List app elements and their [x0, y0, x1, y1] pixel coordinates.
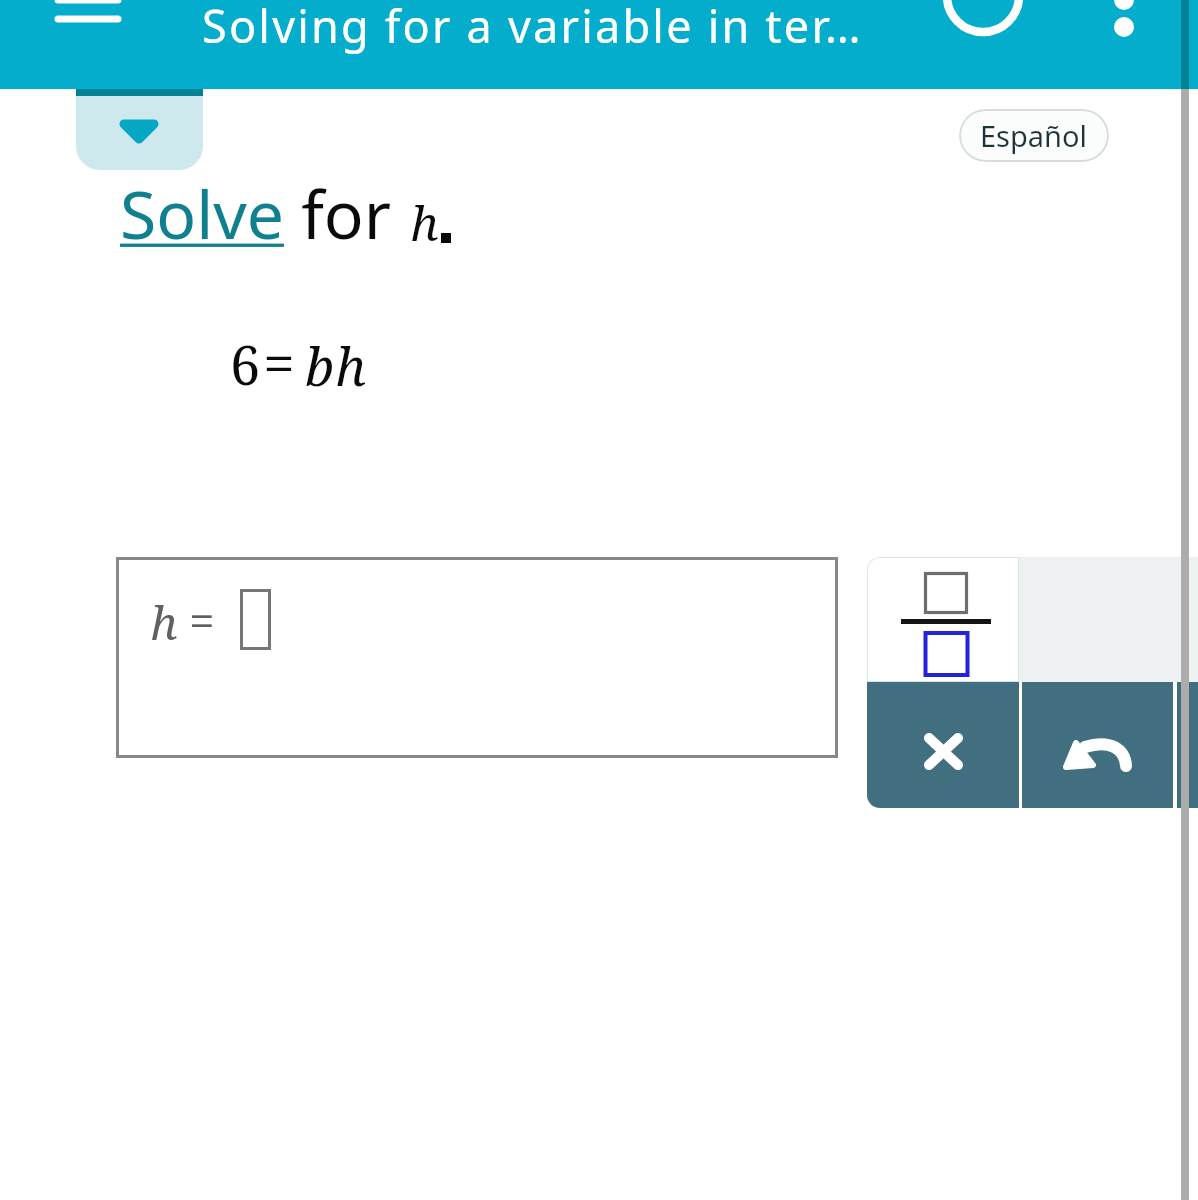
staticText: h [335, 330, 367, 401]
button[interactable]: Answer input area [116, 557, 838, 758]
staticText: b [305, 330, 335, 401]
staticText: for [284, 168, 409, 258]
button[interactable]: More keys [1177, 682, 1198, 808]
button[interactable]: Solve [120, 168, 284, 258]
button[interactable]: Fraction [867, 557, 1019, 682]
button[interactable]: Timer [933, 0, 1033, 39]
button[interactable]: Undo [1022, 682, 1173, 808]
staticText: = [263, 323, 295, 401]
button[interactable]: More options [1092, 0, 1156, 10]
button[interactable]: Clear [867, 682, 1019, 808]
button[interactable]: Expand [76, 96, 203, 170]
button[interactable]: Menu [40, 0, 136, 49]
staticText: 6 [230, 327, 261, 401]
staticText: h [150, 591, 178, 654]
staticText: Español [980, 116, 1088, 155]
button[interactable]: Keypad key [1019, 557, 1198, 682]
button[interactable]: Español [959, 109, 1109, 162]
staticText: h [410, 190, 439, 255]
staticText: = [189, 588, 215, 651]
staticText: Solving for a variable in ter… [202, 0, 863, 56]
